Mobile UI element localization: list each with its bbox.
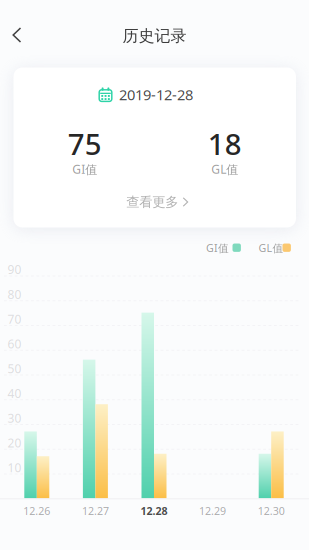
staticText: 2019-12-28: [119, 85, 193, 104]
staticText: 12.29: [199, 504, 226, 518]
staticText: 12.27: [82, 504, 109, 518]
staticText: 18: [208, 124, 242, 163]
staticText: 80: [7, 286, 21, 302]
staticText: GL值: [258, 241, 283, 255]
staticText: 60: [7, 336, 21, 352]
staticText: GI值: [206, 241, 229, 255]
button[interactable]: 查看更多: [108, 192, 208, 212]
staticText: 20: [7, 435, 21, 451]
staticText: 12.30: [258, 504, 285, 518]
staticText: 70: [7, 311, 21, 327]
staticText: 历史记录: [122, 26, 186, 46]
staticText: 30: [7, 410, 21, 426]
staticText: 10: [7, 460, 21, 475]
staticText: 12.28: [140, 504, 167, 518]
staticText: GI值: [72, 161, 97, 177]
staticText: 75: [68, 124, 102, 163]
staticText: 50: [7, 360, 21, 376]
staticText: 12.26: [23, 504, 50, 518]
staticText: 40: [7, 385, 21, 401]
button[interactable]: Back: [0, 13, 34, 57]
staticText: 90: [7, 261, 21, 277]
staticText: 查看更多: [126, 194, 178, 210]
staticText: GL值: [211, 161, 238, 177]
